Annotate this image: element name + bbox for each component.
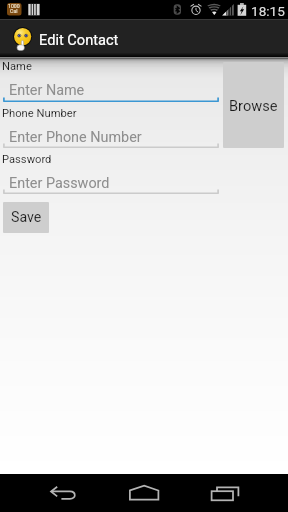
staticText: Browse [229,97,278,114]
button[interactable]: Recent apps [201,474,249,512]
button[interactable]: Back [40,474,88,512]
staticText: Cal [10,8,18,14]
button[interactable]: Browse [223,62,284,148]
staticText: Enter Name [9,82,85,99]
staticText: Phone Number [2,107,77,120]
button[interactable]: Save [3,202,49,233]
staticText: 1000 [8,3,20,9]
staticText: Edit Contact [39,31,119,48]
staticText: 18:15 [251,3,285,19]
staticText: Enter Phone Number [9,129,142,146]
staticText: Password [2,153,52,166]
staticText: Enter Password [9,175,110,192]
staticText: Name [2,60,32,73]
button[interactable]: Home [120,474,168,512]
staticText: Save [11,209,42,226]
